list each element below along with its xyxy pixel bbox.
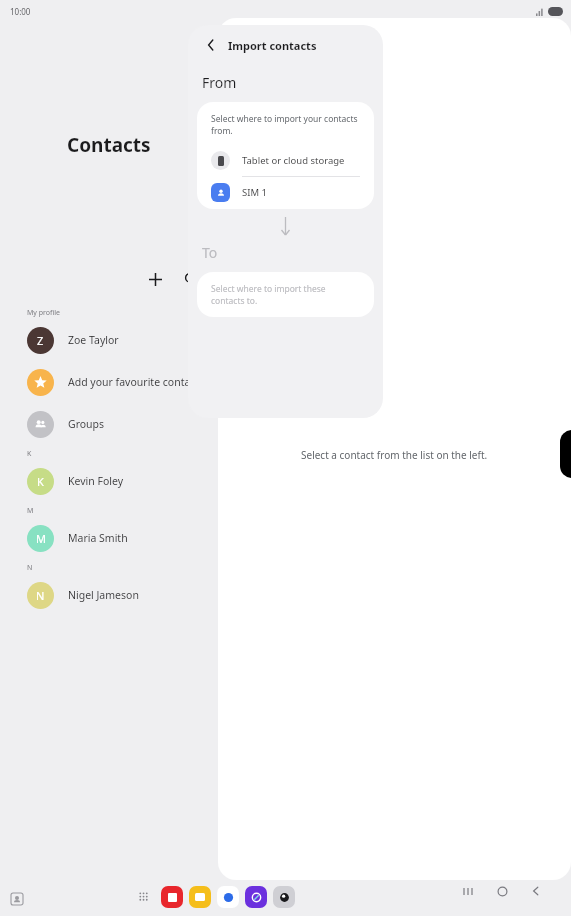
staticText: 10:00 bbox=[10, 6, 31, 17]
button[interactable]: SIM 1 bbox=[197, 177, 374, 208]
button[interactable]: App bbox=[245, 886, 267, 908]
staticText: Add your favourite contacts bbox=[68, 375, 205, 389]
button[interactable]: App bbox=[273, 886, 295, 908]
staticText: K bbox=[37, 474, 44, 489]
staticText: N bbox=[36, 588, 45, 603]
button[interactable]: Groups bbox=[0, 405, 218, 443]
staticText: Maria Smith bbox=[68, 531, 128, 545]
button[interactable]: Add your favourite contacts bbox=[0, 363, 218, 401]
staticText: Tablet or cloud storage bbox=[242, 154, 345, 167]
button[interactable]: Create contact bbox=[140, 264, 170, 294]
staticText: N bbox=[27, 563, 33, 573]
button[interactable]: App bbox=[217, 886, 239, 908]
button[interactable]: Back bbox=[519, 874, 553, 908]
button[interactable]: K bbox=[0, 462, 218, 500]
button[interactable]: Apps bbox=[133, 886, 155, 908]
button[interactable]: M bbox=[0, 519, 218, 557]
button[interactable]: Back bbox=[200, 34, 222, 56]
button[interactable]: Screenshot bbox=[6, 888, 28, 910]
button[interactable]: Z bbox=[0, 321, 218, 359]
staticText: Select where to import your contacts fro… bbox=[211, 113, 360, 137]
staticText: K bbox=[27, 449, 32, 459]
staticText: To bbox=[202, 243, 218, 262]
staticText: M bbox=[36, 531, 46, 546]
button[interactable]: Home bbox=[485, 874, 519, 908]
staticText: Nigel Jameson bbox=[68, 588, 139, 602]
staticText: Groups bbox=[68, 417, 105, 431]
button[interactable]: Recents bbox=[451, 874, 485, 908]
button[interactable]: Search bbox=[176, 264, 206, 294]
staticText: M bbox=[27, 506, 34, 516]
staticText: Import contacts bbox=[228, 38, 317, 53]
staticText: SIM 1 bbox=[242, 186, 267, 199]
staticText: Contacts bbox=[67, 132, 151, 158]
button[interactable]: App bbox=[161, 886, 183, 908]
staticText: Zoe Taylor bbox=[68, 333, 119, 347]
staticText: Z bbox=[37, 333, 44, 348]
button[interactable]: App bbox=[189, 886, 211, 908]
staticText: Select a contact from the list on the le… bbox=[301, 448, 488, 462]
staticText: Select where to import these contacts to… bbox=[211, 283, 360, 307]
button[interactable]: Tablet or cloud storage bbox=[197, 145, 374, 176]
staticText: My profile bbox=[27, 308, 60, 318]
staticText: From bbox=[202, 73, 237, 92]
button[interactable]: N bbox=[0, 576, 218, 614]
staticText: Kevin Foley bbox=[68, 474, 124, 488]
